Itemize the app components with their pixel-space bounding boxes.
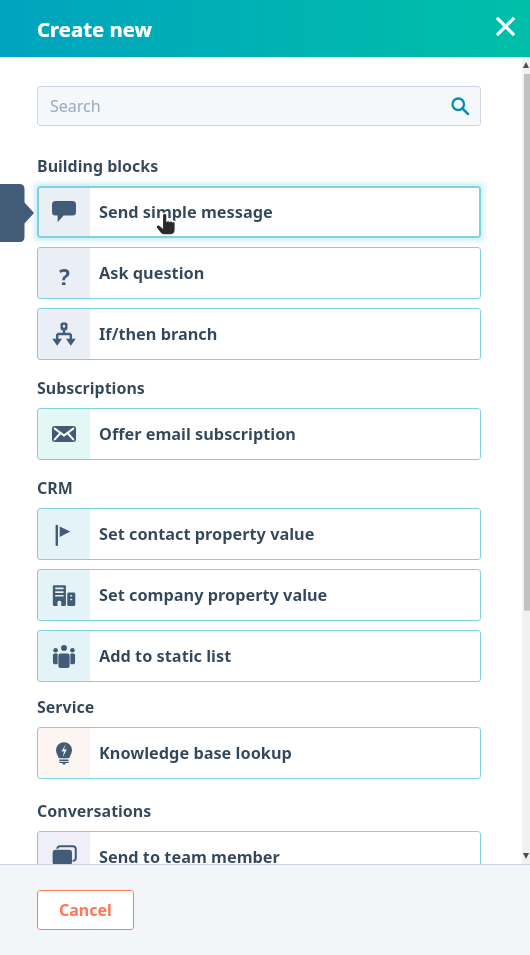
staticText: Knowledge base lookup (99, 742, 292, 764)
staticText: Building blocks (37, 155, 159, 177)
button[interactable]: Send simple message (37, 186, 481, 238)
button[interactable]: Offer email subscription (37, 408, 481, 460)
staticText: Search (50, 95, 101, 117)
staticText: Ask question (99, 262, 205, 284)
button[interactable]: Search (37, 86, 481, 126)
staticText: Add to static list (99, 645, 232, 667)
button[interactable]: ? (37, 247, 481, 299)
other: Search (448, 94, 472, 118)
staticText: Offer email subscription (99, 423, 296, 445)
staticText: Set company property value (99, 584, 328, 606)
staticText: ? (59, 261, 70, 285)
staticText: Subscriptions (37, 377, 145, 399)
button[interactable]: Cancel (37, 890, 134, 930)
staticText: Send to team member (99, 846, 280, 864)
staticText: CRM (37, 477, 73, 499)
staticText: Conversations (37, 800, 152, 822)
staticText: Cancel (59, 899, 112, 921)
button[interactable]: Knowledge base lookup (37, 727, 481, 779)
button[interactable]: Set contact property value (37, 508, 481, 560)
button[interactable]: Add to static list (37, 630, 481, 682)
button[interactable]: Close (483, 4, 527, 48)
button[interactable]: If/then branch (37, 308, 481, 360)
staticText: Create new (37, 15, 152, 43)
button[interactable]: Set company property value (37, 569, 481, 621)
staticText: If/then branch (99, 323, 218, 345)
button[interactable]: Send to team member (37, 831, 481, 864)
staticText: Send simple message (99, 201, 273, 223)
staticText: Service (37, 696, 95, 718)
staticText: Set contact property value (99, 523, 315, 545)
